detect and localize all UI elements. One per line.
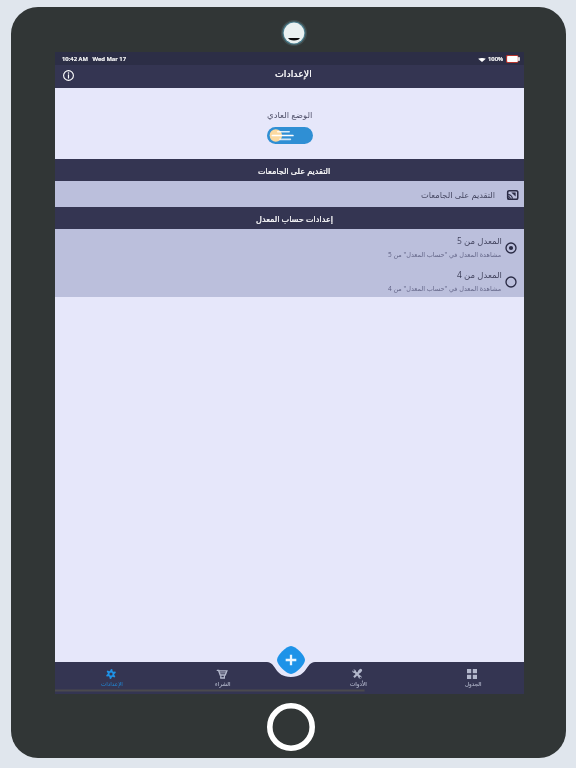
button[interactable]: الإعدادات — [56, 662, 166, 694]
staticText: 100% — [488, 55, 504, 63]
staticText: إعدادات حساب المعدل — [256, 213, 333, 224]
staticText: الأدوات — [350, 681, 367, 688]
staticText: مشاهدة المعدل في "حساب المعدل" من 4 — [388, 284, 502, 293]
staticText: مشاهدة المعدل في "حساب المعدل" من 5 — [388, 250, 502, 259]
staticText: الجدول — [465, 681, 482, 688]
staticText: الوضع العادي — [267, 109, 313, 121]
button[interactable]: Toggle theme — [267, 127, 313, 144]
button[interactable]: المعدل من 4 — [55, 263, 524, 297]
staticText: الإعدادات — [275, 68, 312, 79]
button[interactable]: Add — [277, 646, 305, 674]
staticText: الإعدادات — [101, 681, 123, 688]
staticText: 10:42 AM Wed Mar 17 — [62, 55, 127, 63]
button[interactable]: التقديم على الجامعات — [55, 181, 524, 207]
button[interactable]: المعدل من 5 — [55, 229, 524, 263]
staticText: المعدل من 5 — [457, 235, 502, 247]
button[interactable]: Info — [58, 65, 78, 85]
staticText: المعدل من 4 — [457, 269, 502, 281]
staticText: الشراء — [215, 681, 231, 688]
staticText: التقديم على الجامعات — [258, 165, 331, 176]
button[interactable]: الجدول — [417, 662, 527, 694]
button[interactable]: الأدوات — [302, 662, 412, 694]
button[interactable]: الشراء — [167, 662, 277, 694]
staticText: التقديم على الجامعات — [421, 189, 496, 200]
